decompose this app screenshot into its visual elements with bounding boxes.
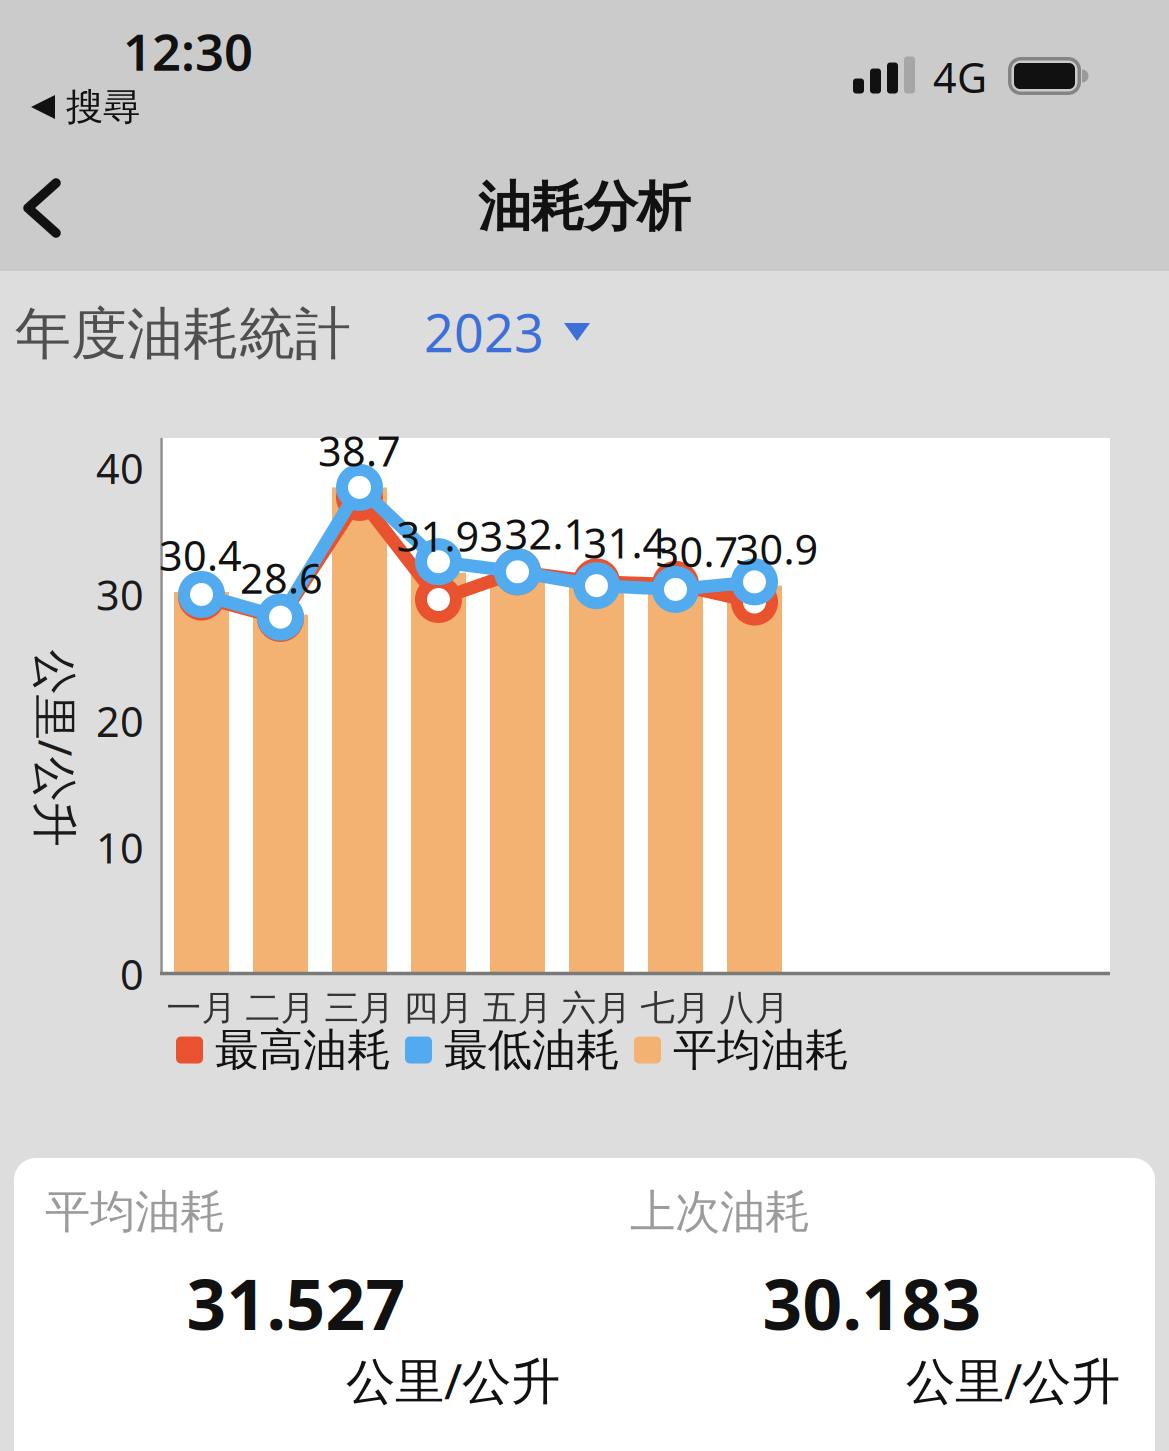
- button[interactable]: 平均油耗: [634, 1023, 934, 1077]
- button[interactable]: 2023: [424, 296, 824, 368]
- staticText: 30.7: [655, 524, 738, 579]
- staticText: 31.4: [583, 515, 666, 570]
- staticText: 最高油耗: [215, 1023, 391, 1077]
- button[interactable]: 搜尋: [31, 83, 391, 131]
- staticText: 六月: [561, 987, 631, 1029]
- button[interactable]: 最高油耗: [176, 1023, 476, 1077]
- staticText: 31.93: [396, 508, 503, 563]
- staticText: 20: [96, 694, 144, 748]
- staticText: 最低油耗: [444, 1023, 620, 1077]
- staticText: 公里/公升: [906, 1347, 1120, 1413]
- staticText: 油耗分析: [478, 174, 690, 240]
- staticText: 38.7: [318, 423, 401, 478]
- staticText: 12:30: [123, 17, 253, 85]
- staticText: 八月: [719, 987, 789, 1029]
- staticText: 40: [96, 441, 144, 495]
- staticText: 四月: [403, 987, 473, 1029]
- staticText: 年度油耗統計: [15, 300, 351, 368]
- staticText: 上次油耗: [630, 1184, 810, 1240]
- staticText: 30.4: [159, 527, 242, 582]
- staticText: 七月: [640, 987, 710, 1029]
- staticText: 五月: [482, 987, 552, 1029]
- staticText: 二月: [245, 987, 315, 1029]
- staticText: 30.9: [735, 521, 818, 576]
- staticText: 28.6: [240, 550, 323, 605]
- staticText: 搜尋: [66, 84, 140, 130]
- staticText: 0: [120, 947, 144, 1001]
- staticText: 32.1: [504, 506, 587, 561]
- staticText: 30: [96, 567, 144, 622]
- staticText: 平均油耗: [673, 1023, 849, 1077]
- staticText: 2023: [424, 297, 544, 367]
- staticText: 公里/公升: [0, 718, 154, 778]
- button[interactable]: 最低油耗: [405, 1023, 705, 1077]
- staticText: 31.527: [186, 1257, 405, 1349]
- staticText: 平均油耗: [45, 1184, 225, 1240]
- staticText: 一月: [166, 987, 236, 1029]
- staticText: 4G: [933, 50, 987, 104]
- staticText: 三月: [324, 987, 394, 1029]
- button[interactable]: [23, 179, 63, 237]
- staticText: 10: [96, 820, 144, 875]
- staticText: 公里/公升: [346, 1347, 560, 1413]
- staticText: 30.183: [762, 1257, 981, 1349]
